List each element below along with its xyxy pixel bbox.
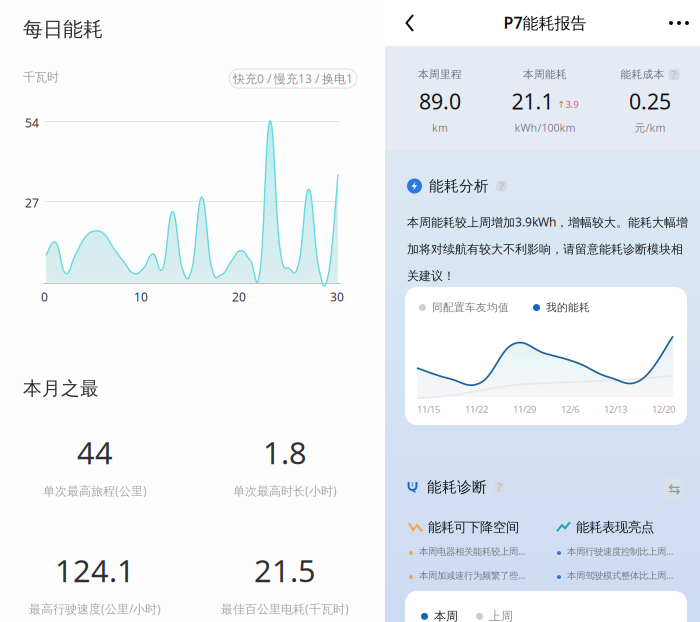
staticText: km [432,120,448,135]
staticText: 0 [41,289,48,305]
staticText: 能耗表现亮点 [576,519,654,535]
staticText: 能耗成本 [620,68,664,81]
staticText: P7能耗报告 [503,12,586,33]
button[interactable]: 返回 [403,12,425,34]
staticText: 本周行驶速度控制比上周… [567,545,673,557]
button[interactable]: 快充0 / 慢充13 / 换电1 [229,69,357,88]
staticText: 加将对续航有较大不利影响，请留意能耗诊断模块相 [407,242,683,257]
staticText: 本周 [434,609,458,622]
staticText: ⇆ [668,481,680,497]
staticText: 11/15 [417,403,440,415]
staticText: 能耗可下降空间 [428,519,519,535]
staticText: ? [671,67,676,82]
staticText: ? [499,179,504,193]
staticText: 每日能耗 [23,17,103,42]
staticText: 本周加减速行为频繁了些… [419,569,525,581]
staticText: 44 [77,432,113,473]
staticText: 我的能耗 [546,301,590,314]
staticText: kWh/100km [514,120,575,135]
staticText: ? [497,480,502,494]
staticText: 同配置车友均值 [432,301,509,314]
staticText: 本周能耗 [523,68,567,81]
staticText: 千瓦时 [23,70,59,85]
staticText: 本周里程 [418,68,462,81]
staticText: 12/6 [561,403,579,415]
staticText: 单次最高旅程(公里) [43,483,147,499]
staticText: 89.0 [419,87,461,115]
staticText: 27 [25,195,39,211]
staticText: 21.1 [511,87,553,115]
staticText: 最佳百公里电耗(千瓦时) [221,601,349,617]
staticText: 21.5 [254,550,316,591]
staticText: 30 [330,289,344,305]
staticText: 本周电器相关能耗较上周… [419,545,525,557]
staticText: 元/km [634,120,665,135]
button[interactable]: 更多 [667,14,691,32]
staticText: 本周能耗较上周增加3.9kWh，增幅较大。能耗大幅增 [407,214,688,230]
staticText: 本周驾驶模式整体比上周… [567,569,673,581]
staticText: 1.8 [263,432,307,473]
staticText: 关建议！ [407,269,455,283]
staticText: 最高行驶速度(公里/小时) [29,601,161,617]
button[interactable]: 切换 [663,478,685,500]
staticText: 12/20 [652,403,675,415]
staticText: 12/13 [604,403,627,415]
staticText: 单次最高时长(小时) [233,483,337,499]
staticText: 20 [232,289,246,305]
staticText: 能耗分析 [429,177,489,195]
staticText: 10 [134,289,148,305]
staticText: 54 [25,115,39,131]
staticText: 0.25 [629,87,671,115]
staticText: 124.1 [55,550,135,591]
staticText: 11/22 [465,403,488,415]
staticText: ↑3.9 [557,98,578,110]
staticText: 能耗诊断 [427,478,487,496]
staticText: 11/29 [513,403,536,415]
staticText: 上周 [489,609,513,622]
staticText: 本月之最 [23,377,99,400]
staticText: 快充0 / 慢充13 / 换电1 [233,70,353,86]
